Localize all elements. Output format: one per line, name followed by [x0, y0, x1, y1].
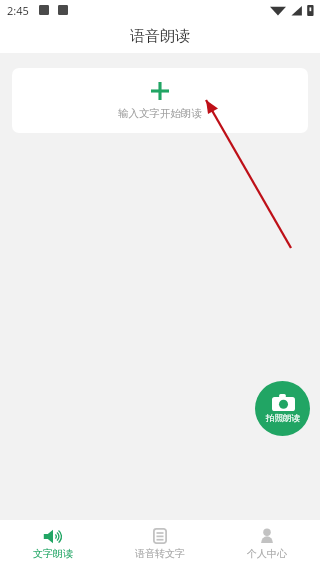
- staticText: 语音朗读: [130, 27, 190, 46]
- staticText: 拍照朗读: [266, 413, 300, 424]
- button[interactable]: 语音转文字: [106, 520, 213, 568]
- staticText: 个人中心: [247, 547, 287, 560]
- button[interactable]: 输入文字开始朗读: [12, 68, 308, 133]
- button[interactable]: 文字朗读: [0, 520, 106, 568]
- staticText: 文字朗读: [33, 547, 73, 560]
- staticText: 2:45: [7, 3, 29, 18]
- button[interactable]: 拍照朗读: [255, 381, 310, 436]
- staticText: 输入文字开始朗读: [118, 107, 202, 120]
- staticText: 语音转文字: [135, 547, 185, 560]
- button[interactable]: 个人中心: [213, 520, 320, 568]
